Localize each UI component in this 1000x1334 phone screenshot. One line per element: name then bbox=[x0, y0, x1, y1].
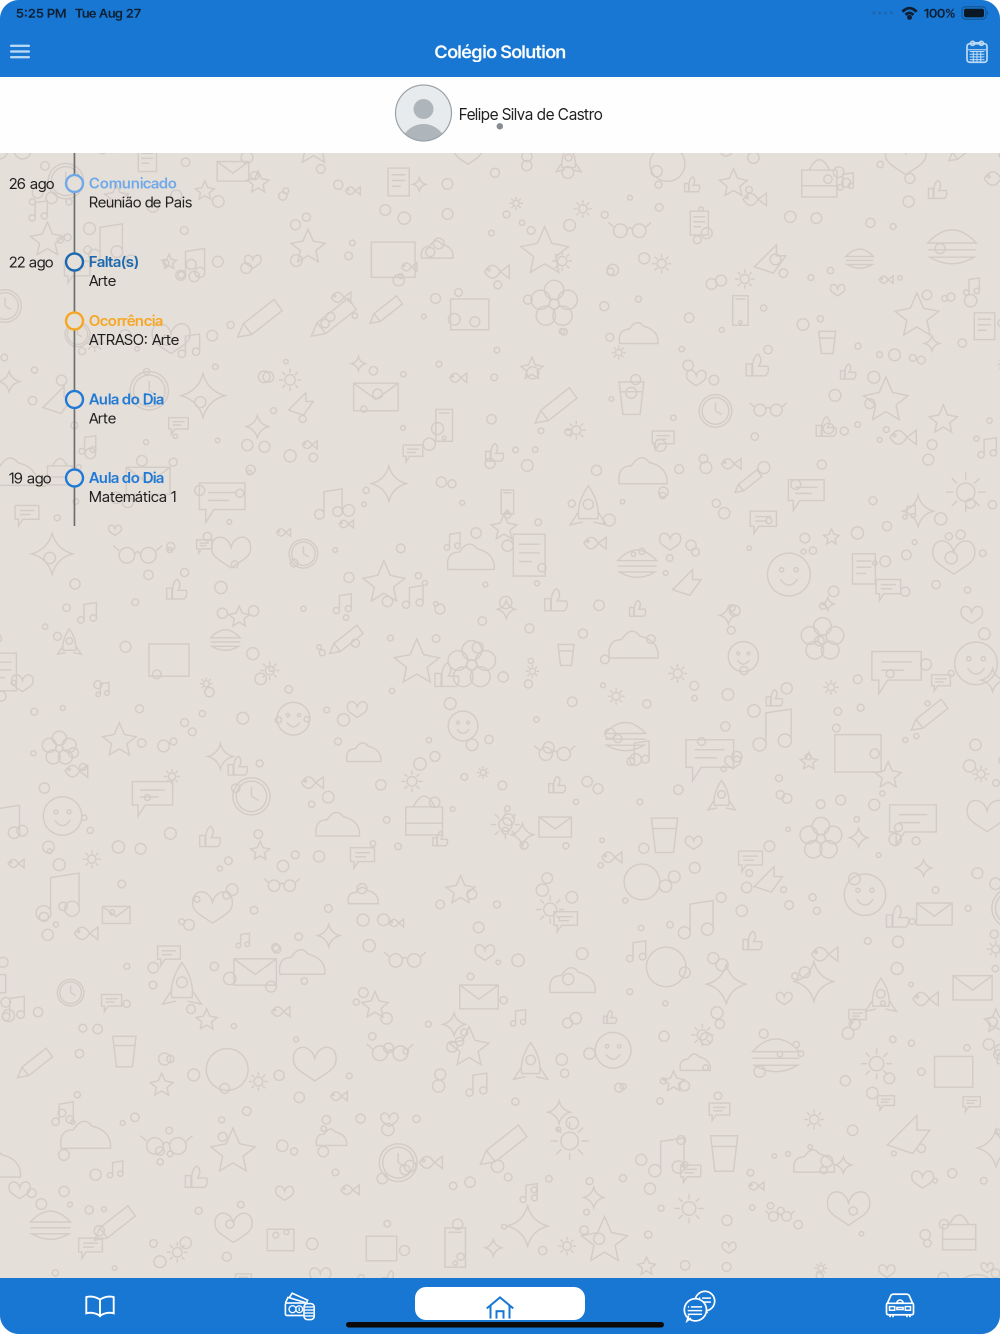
staticText: Matemática 1 bbox=[89, 487, 176, 506]
button[interactable]: Agenda bbox=[0, 1278, 200, 1334]
button[interactable]: Menu bbox=[0, 32, 44, 71]
button[interactable]: Início bbox=[400, 1278, 600, 1334]
button[interactable]: Calendário bbox=[953, 32, 1000, 70]
staticText: 26 ago bbox=[9, 174, 54, 193]
staticText: Ocorrência bbox=[89, 311, 163, 330]
staticText: Colégio Solution bbox=[434, 40, 565, 62]
button[interactable]: Transporte bbox=[800, 1278, 1000, 1334]
staticText: Arte bbox=[89, 409, 116, 427]
staticText: ATRASO: Arte bbox=[89, 330, 179, 349]
button[interactable]: Mensagens bbox=[600, 1278, 800, 1334]
button[interactable]: Financeiro bbox=[200, 1278, 400, 1334]
staticText: 19 ago bbox=[9, 469, 51, 487]
staticText: Tue Aug 27 bbox=[75, 5, 141, 21]
staticText: Falta(s) bbox=[89, 252, 139, 271]
staticText: Arte bbox=[89, 271, 116, 290]
staticText: 22 ago bbox=[9, 253, 53, 271]
staticText: Felipe Silva de Castro bbox=[459, 105, 603, 124]
staticText: 5:25 PM bbox=[16, 5, 66, 21]
staticText: 100% bbox=[924, 5, 956, 21]
staticText: Aula do Dia bbox=[89, 468, 164, 487]
staticText: Aula do Dia bbox=[89, 390, 164, 408]
staticText: Reunião de Pais bbox=[89, 193, 192, 211]
staticText: Comunicado bbox=[89, 174, 177, 192]
